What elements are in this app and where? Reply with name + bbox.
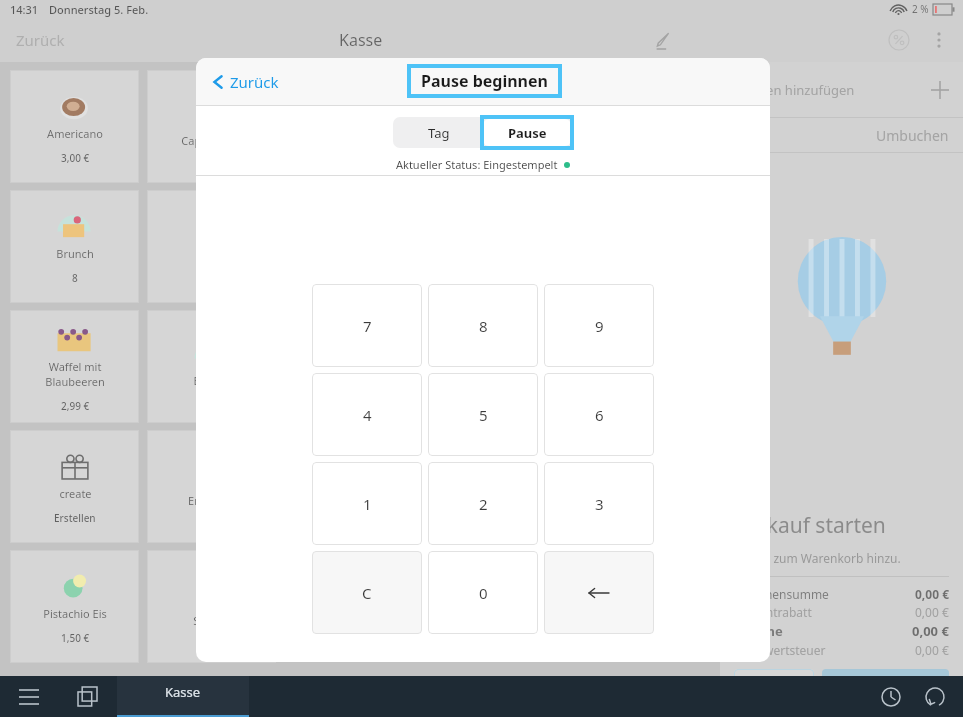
staticText: 1 bbox=[363, 494, 372, 514]
staticText: Waffel mit Blaubeeren bbox=[45, 359, 105, 389]
button[interactable]: Americano bbox=[10, 70, 139, 183]
staticText: Kasse bbox=[864, 677, 908, 699]
button[interactable]: Schoko bbox=[147, 550, 276, 663]
staticText: Schoko bbox=[193, 613, 231, 628]
button[interactable]: Zurück bbox=[0, 18, 120, 62]
button[interactable]: Kunden hinzufügen bbox=[720, 62, 963, 117]
button[interactable]: Pistachio Eis bbox=[10, 550, 139, 663]
staticText: Brüssel bbox=[193, 373, 232, 388]
button[interactable]: Kasse bbox=[117, 676, 249, 717]
button[interactable]: 8 bbox=[428, 284, 538, 367]
button[interactable]: Verlauf bbox=[869, 676, 913, 717]
staticText: 8 bbox=[72, 271, 78, 285]
staticText: Kasse bbox=[165, 683, 201, 701]
staticText: 0,00 € bbox=[915, 586, 949, 602]
button[interactable]: Mehr bbox=[921, 22, 957, 58]
staticText: Pistachio Eis bbox=[43, 606, 107, 621]
staticText: Erstellen bbox=[54, 511, 96, 525]
staticText: 2 bbox=[479, 494, 488, 514]
button[interactable]: Fenster bbox=[57, 676, 117, 717]
button[interactable]: 9 bbox=[544, 284, 654, 367]
button[interactable]: Tag bbox=[395, 119, 483, 146]
staticText: Verkauf starten bbox=[734, 511, 886, 540]
button[interactable]: Synchronisieren bbox=[913, 676, 957, 717]
button[interactable]: create bbox=[10, 430, 139, 543]
staticText: 2 % bbox=[912, 2, 929, 16]
staticText: Zurück bbox=[230, 72, 279, 92]
button[interactable]: 0 bbox=[428, 551, 538, 634]
staticText: 2,99 € bbox=[61, 399, 90, 413]
staticText: 1,50 € bbox=[61, 631, 90, 645]
staticText: create bbox=[59, 486, 92, 501]
button[interactable]: Pause bbox=[483, 119, 571, 146]
button[interactable]: ToGo bbox=[734, 669, 814, 707]
button[interactable]: 4 bbox=[312, 373, 422, 456]
staticText: 6 bbox=[595, 405, 604, 425]
staticText: 0,00 € bbox=[915, 642, 949, 658]
button[interactable]: Cappuccino bbox=[147, 70, 276, 183]
staticText: Aktueller Status: Eingestempelt bbox=[396, 157, 558, 172]
staticText: Gesamtrabatt bbox=[734, 604, 812, 620]
staticText: 14:31 bbox=[10, 2, 39, 17]
staticText: 0,00 € bbox=[912, 622, 949, 640]
staticText: Artikel zum Warenkorb hinzu. bbox=[734, 550, 901, 566]
button[interactable]: 3 bbox=[544, 462, 654, 545]
staticText: Zurück bbox=[16, 30, 65, 50]
button[interactable]: 2 bbox=[428, 462, 538, 545]
button[interactable]: 1 bbox=[312, 462, 422, 545]
staticText: Kasse bbox=[339, 29, 383, 51]
button[interactable]: 6 bbox=[544, 373, 654, 456]
staticText: Donnerstag 5. Feb. bbox=[49, 2, 149, 17]
staticText: Cappuccino bbox=[181, 133, 242, 148]
staticText: 0 bbox=[479, 583, 488, 603]
staticText: Pause beginnen bbox=[421, 70, 548, 92]
button[interactable]: Erdbeere bbox=[147, 430, 276, 543]
staticText: 9 bbox=[595, 316, 604, 336]
button[interactable]: Brunch bbox=[10, 190, 139, 303]
staticText: 5 bbox=[479, 405, 488, 425]
button[interactable]: Brüssel bbox=[147, 310, 276, 423]
button[interactable]: 7 bbox=[312, 284, 422, 367]
staticText: Kunden hinzufügen bbox=[734, 81, 855, 99]
staticText: Zwischensumme bbox=[734, 586, 829, 602]
button[interactable]: Umbuchen bbox=[720, 118, 963, 152]
button[interactable]: Löschen bbox=[544, 551, 654, 634]
button[interactable]: C bbox=[312, 551, 422, 634]
button[interactable]: Menü bbox=[0, 676, 57, 717]
button[interactable]: Zurück bbox=[208, 66, 283, 98]
staticText: 3 bbox=[595, 494, 604, 514]
button[interactable]: Pizza bbox=[147, 190, 276, 303]
staticText: 8 bbox=[479, 316, 488, 336]
staticText: Brunch bbox=[56, 246, 94, 261]
staticText: Americano bbox=[47, 126, 103, 141]
staticText: Summe bbox=[734, 622, 783, 640]
button[interactable]: Rabatt bbox=[877, 18, 921, 62]
staticText: C bbox=[362, 583, 372, 603]
staticText: Erdbeere bbox=[188, 493, 235, 508]
staticText: 7 bbox=[363, 316, 372, 336]
button[interactable]: 5 bbox=[428, 373, 538, 456]
button[interactable]: Waffel mit Blaubeeren bbox=[10, 310, 139, 423]
staticText: Pause bbox=[508, 124, 547, 142]
staticText: Tag bbox=[428, 124, 450, 142]
staticText: Umbuchen bbox=[876, 126, 949, 145]
button[interactable]: Kasse bbox=[822, 669, 949, 707]
staticText: Mehrwertsteuer bbox=[734, 642, 826, 658]
staticText: 3,00 € bbox=[61, 151, 90, 165]
button[interactable]: Bearbeiten bbox=[603, 18, 723, 62]
staticText: 4 bbox=[363, 405, 372, 425]
staticText: 0,00 € bbox=[915, 604, 949, 620]
